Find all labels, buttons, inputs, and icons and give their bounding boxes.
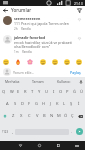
button[interactable]: J [47,98,54,110]
button[interactable]: Send [74,122,85,141]
staticText: Q [2,89,6,95]
staticText: Merhaba [5,79,20,84]
staticText: Ö [64,113,68,119]
button[interactable]: Back [11,141,30,150]
button[interactable]: A [3,98,11,110]
staticText: Y [38,89,41,95]
button[interactable]: Hide keyboard [68,141,85,150]
button[interactable]: Y [36,86,43,98]
button[interactable]: Back [2,7,9,14]
button[interactable]: I [50,86,57,98]
button[interactable]: Emoji [26,58,34,66]
button[interactable]: Home [30,141,49,150]
staticText: , [12,129,14,135]
button[interactable]: H [40,98,47,110]
staticText: U [45,89,48,95]
staticText: Yorum ekle... [13,70,69,75]
button[interactable]: X [17,110,25,122]
button[interactable]: T [29,86,36,98]
staticText: V [36,113,39,119]
button[interactable]: Q [0,86,8,98]
button[interactable]: C [25,110,33,122]
button[interactable]: G [33,98,40,110]
button[interactable]: E [15,86,22,98]
staticText: D [21,101,24,107]
button[interactable]: Emoji [75,58,83,66]
button[interactable]: F [26,98,33,110]
staticText: R [24,89,27,95]
staticText: seemeeeeeeen [14,16,41,21]
staticText: encok hazirdilar, sözcük ve prabaeti ols… [14,40,74,49]
button[interactable]: W [8,86,15,98]
staticText: 111 Pra ni qui japola Torres onlen [14,21,69,26]
button[interactable]: Emoji [2,58,10,66]
staticText: K [56,101,59,107]
button[interactable]: Ç [69,110,76,122]
button[interactable]: Backspace [76,110,85,122]
staticText: M [57,113,61,119]
button[interactable]: Emoji [14,58,22,66]
staticText: Paylaş [70,70,81,75]
staticText: E [17,89,20,95]
staticText: Yorumlar [11,7,32,13]
button[interactable]: N [48,110,55,122]
button[interactable]: S [11,98,19,110]
button[interactable]: U [43,86,50,98]
staticText: B [43,113,46,119]
staticText: Ü [80,89,83,95]
button[interactable]: jalmadir favorbod [0,32,85,55]
button[interactable]: Ş [68,98,75,110]
button[interactable]: L [61,98,68,110]
button[interactable]: Tamam [25,77,51,86]
button[interactable]: Z [9,110,17,122]
button[interactable]: D [19,98,26,110]
button[interactable]: R [22,86,29,98]
staticText: jalmadir favorbod [14,35,46,40]
staticText: H [42,101,46,107]
button[interactable]: B [41,110,48,122]
button[interactable]: V [33,110,41,122]
button[interactable]: Emoji [51,58,59,66]
button[interactable]: M [55,110,62,122]
button[interactable]: İ [75,98,82,110]
staticText: ?123 [2,130,9,134]
button[interactable]: O [57,86,64,98]
staticText: P [66,89,69,95]
staticText: 1m [14,50,19,54]
button[interactable]: seemeeeeeeen [0,14,85,32]
staticText: X [20,113,23,119]
button[interactable]: Voice input [77,77,85,86]
button[interactable]: Like [76,16,82,22]
staticText: S [14,101,17,107]
staticText: F [28,101,31,107]
button[interactable]: Like [76,35,82,41]
button[interactable]: Kullanıcı [51,77,77,86]
button[interactable]: Ğ [71,86,78,98]
button[interactable]: Merhaba [0,77,25,86]
button[interactable]: Emoji [63,58,71,66]
button[interactable]: Shift [0,110,9,122]
staticText: Ş [70,101,73,107]
staticText: I [53,89,55,95]
button[interactable]: P [64,86,71,98]
button[interactable]: , [10,122,15,141]
button[interactable]: Emoji [39,58,47,66]
button[interactable]: Ü [78,86,85,98]
staticText: . [71,129,73,135]
button[interactable]: K [54,98,61,110]
button[interactable]: Filter [76,7,83,14]
staticText: 2h [14,27,18,31]
button[interactable]: Ö [62,110,69,122]
button[interactable]: Recents [49,141,68,150]
button[interactable]: Yanıtla [22,50,32,54]
button[interactable]: Paylaş [69,69,82,76]
staticText: Yanıtla [21,27,31,31]
staticText: C [28,113,31,119]
staticText: Ğ [73,89,76,95]
staticText: Ç [71,113,74,119]
button[interactable]: ?123 [0,122,10,141]
staticText: T [31,89,34,95]
button[interactable]: Yanıtla [21,27,31,31]
